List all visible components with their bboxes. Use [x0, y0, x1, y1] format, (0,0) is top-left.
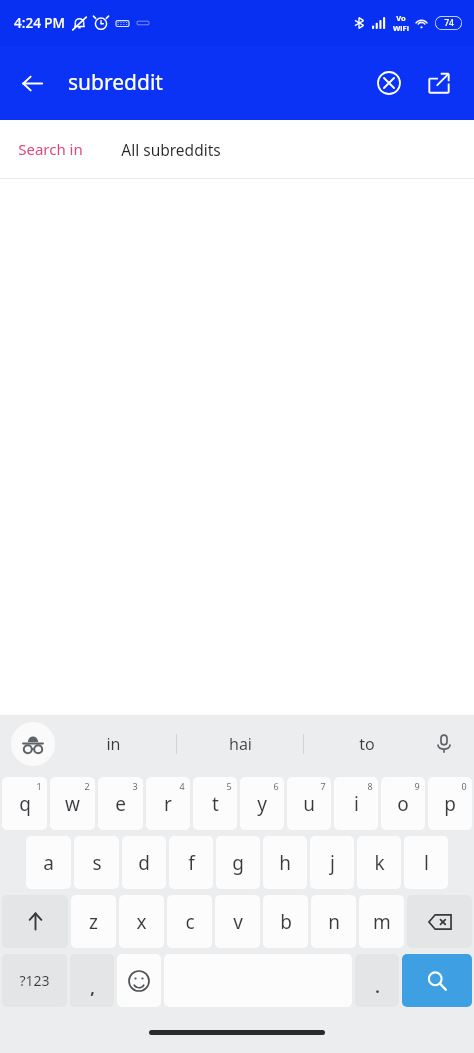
staticText: WiFi	[393, 23, 409, 33]
staticText: y	[257, 791, 267, 817]
staticText: v	[233, 909, 243, 935]
staticText: 3	[132, 780, 138, 792]
button[interactable]: h	[263, 836, 307, 889]
staticText: to	[359, 733, 375, 755]
staticText: in	[106, 733, 121, 755]
staticText: 1	[36, 780, 42, 792]
button[interactable]: u	[287, 777, 331, 830]
button[interactable]: e	[98, 777, 143, 830]
button[interactable]: w	[50, 777, 95, 830]
button[interactable]: t	[193, 777, 237, 830]
staticText: l	[424, 850, 429, 876]
staticText: e	[115, 791, 126, 817]
button[interactable]: Back	[10, 61, 54, 105]
button[interactable]: ,	[70, 954, 114, 1007]
staticText: 2	[84, 780, 90, 792]
staticText: 0	[461, 780, 467, 792]
staticText: 6	[273, 780, 279, 792]
button[interactable]: p	[428, 777, 472, 830]
staticText: x	[136, 909, 147, 935]
staticText: g	[232, 850, 244, 876]
staticText: 4:24 PM	[14, 14, 65, 32]
staticText: t	[212, 791, 219, 817]
button[interactable]: g	[216, 836, 260, 889]
button[interactable]: z	[71, 895, 116, 948]
button[interactable]: Open in browser	[418, 62, 460, 104]
button[interactable]: c	[167, 895, 212, 948]
staticText: f	[188, 850, 195, 876]
button[interactable]: k	[357, 836, 401, 889]
staticText: u	[303, 791, 315, 817]
button[interactable]: m	[359, 895, 404, 948]
staticText: c	[185, 909, 195, 935]
button[interactable]: y	[240, 777, 284, 830]
staticText: j	[330, 850, 335, 876]
button[interactable]: Clear query	[368, 62, 410, 104]
button[interactable]: v	[215, 895, 260, 948]
staticText: 9	[414, 780, 420, 792]
button[interactable]: f	[169, 836, 213, 889]
staticText: o	[397, 791, 409, 817]
staticText: 5	[226, 780, 232, 792]
button[interactable]: ?123	[2, 954, 67, 1007]
button[interactable]: a	[26, 836, 71, 889]
staticText: ?123	[19, 971, 50, 990]
button[interactable]: in	[50, 721, 176, 767]
staticText: m	[373, 909, 391, 935]
staticText: b	[280, 909, 292, 935]
staticText: Vo	[396, 13, 406, 23]
button[interactable]: Search in	[0, 120, 474, 178]
staticText: 7	[320, 780, 326, 792]
button[interactable]: l	[404, 836, 448, 889]
button[interactable]: Shift	[2, 895, 68, 948]
staticText: Search in	[18, 139, 83, 159]
staticText: s	[92, 850, 102, 876]
staticText: q	[19, 791, 31, 817]
button[interactable]: hai	[177, 721, 303, 767]
button[interactable]: s	[74, 836, 119, 889]
button[interactable]: Incognito mode	[11, 722, 55, 766]
button[interactable]: .	[355, 954, 399, 1007]
staticText: hai	[229, 733, 252, 755]
staticText: ,	[90, 977, 95, 999]
staticText: 4	[179, 780, 185, 792]
button[interactable]: o	[381, 777, 425, 830]
button[interactable]: Voice input	[424, 724, 464, 764]
button[interactable]: j	[310, 836, 354, 889]
staticText: 74	[444, 17, 454, 29]
staticText: p	[444, 791, 456, 817]
button[interactable]: Backspace	[407, 895, 472, 948]
button[interactable]: x	[119, 895, 164, 948]
button[interactable]: d	[122, 836, 166, 889]
button[interactable]: b	[263, 895, 308, 948]
staticText: w	[65, 791, 80, 817]
staticText: i	[354, 791, 359, 817]
staticText: h	[279, 850, 291, 876]
button[interactable]: n	[311, 895, 356, 948]
button[interactable]: to	[304, 721, 430, 767]
staticText: r	[164, 791, 172, 817]
staticText: subreddit	[68, 68, 163, 97]
button[interactable]: i	[334, 777, 378, 830]
button[interactable]: q	[2, 777, 47, 830]
button[interactable]: Search	[402, 954, 472, 1007]
staticText: z	[89, 909, 98, 935]
button[interactable]: r	[146, 777, 190, 830]
staticText: All subreddits	[121, 139, 221, 160]
staticText: k	[374, 850, 385, 876]
button[interactable]: Emoji	[117, 954, 161, 1007]
staticText: 8	[367, 780, 373, 792]
staticText: .	[375, 976, 380, 998]
staticText: n	[328, 909, 340, 935]
staticText: a	[43, 850, 54, 876]
staticText: d	[138, 850, 150, 876]
